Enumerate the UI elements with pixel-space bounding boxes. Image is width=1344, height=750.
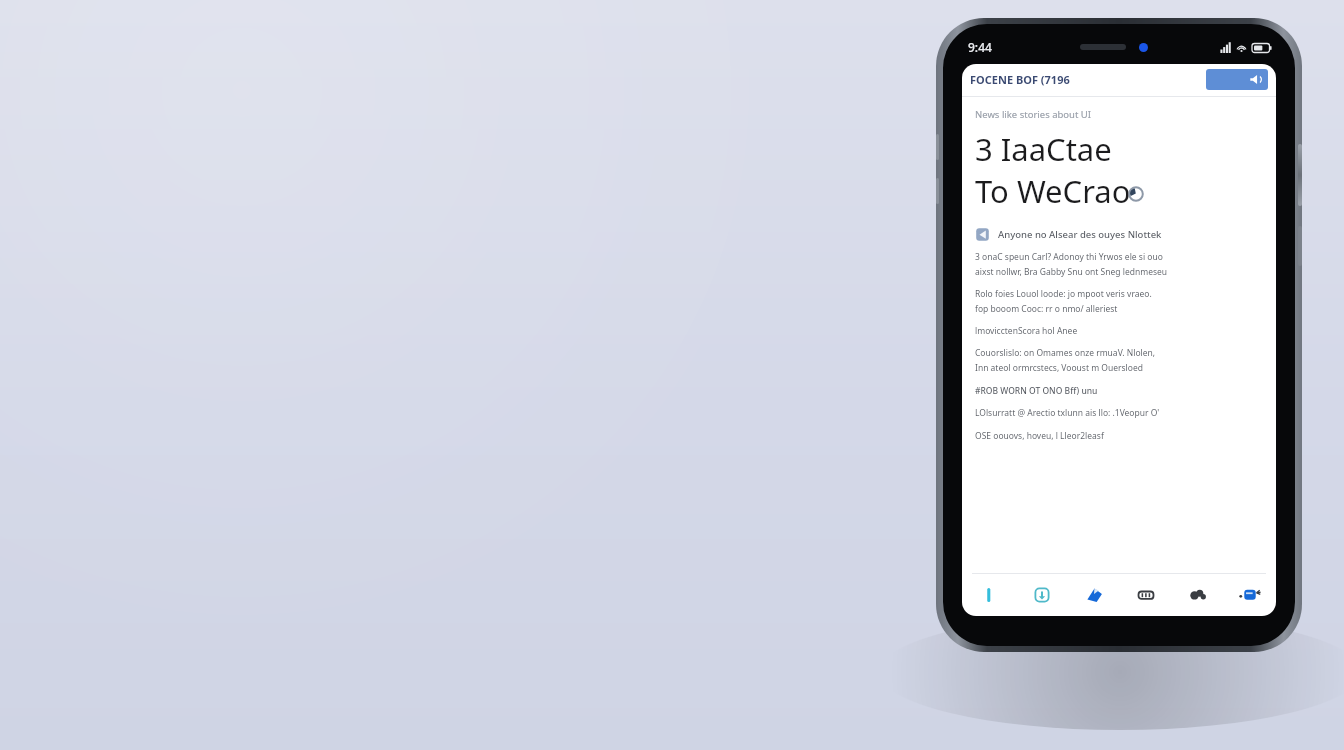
staticText: #ROB WORN OT ONO Bff) unu xyxy=(975,385,1098,397)
button[interactable]: Mute xyxy=(1206,69,1268,90)
staticText: LOlsurratt @ Arectio txlunn ais llo: .1V… xyxy=(975,407,1160,419)
staticText: lmovicctenScora hol Anee xyxy=(975,325,1078,337)
button[interactable]: FOCENE BOF (7196 xyxy=(970,72,1206,87)
button[interactable]: Home xyxy=(962,574,1015,616)
staticText: 9:44 xyxy=(968,39,992,55)
button[interactable]: More xyxy=(1172,574,1224,616)
button[interactable]: Notifications xyxy=(1224,574,1276,616)
staticText: 3 onaC speun Carl? Adonoy thi Yrwos ele … xyxy=(975,251,1163,263)
staticText: fop booom Cooc: rr o nmo/ alleriest xyxy=(975,303,1118,315)
staticText: News like stories about UI xyxy=(975,108,1092,121)
staticText: Rolo foies Louol loode: jo mpoot veris v… xyxy=(975,288,1152,300)
staticText: 3 IaaCtae xyxy=(975,128,1112,170)
staticText: Anyone no Alsear des ouyes Nlottek xyxy=(998,228,1162,241)
staticText: Inn ateol ormrcstecs, Vooust m Ouersloed xyxy=(975,362,1143,374)
button[interactable]: Downloads xyxy=(1015,574,1068,616)
staticText: OSE oouovs, hoveu, l Lleor2leasf xyxy=(975,430,1104,442)
staticText: Couorslislo: on Omames onze rmuaV. Nlole… xyxy=(975,347,1156,359)
staticText: To WeCrao xyxy=(975,170,1131,212)
button[interactable]: Explore xyxy=(1068,574,1120,616)
button[interactable]: Library xyxy=(1120,574,1172,616)
staticText: aixst nollwr, Bra Gabby Snu ont Sneg led… xyxy=(975,266,1168,278)
